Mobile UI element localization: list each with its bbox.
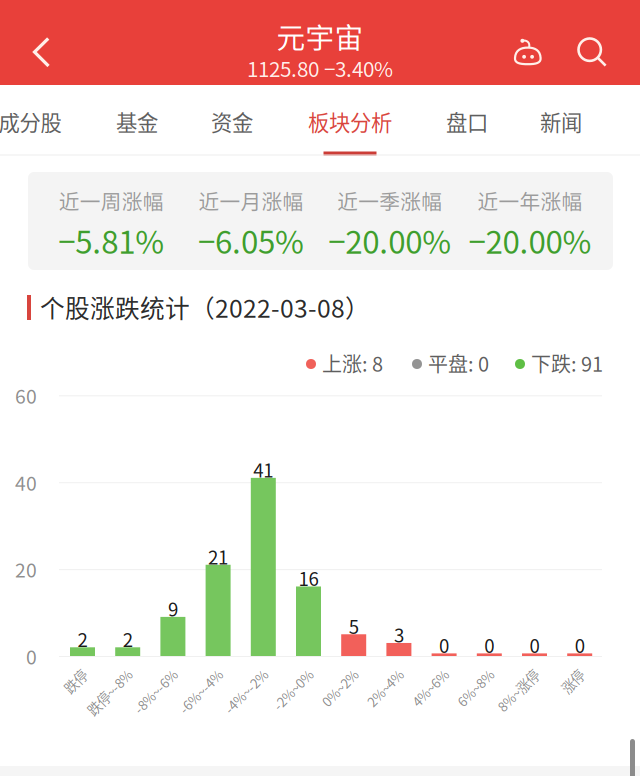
staticText: -8%~-6%	[120, 662, 175, 682]
staticText: 资金	[211, 106, 253, 137]
staticText: −20.00%	[468, 217, 591, 263]
staticText: 成分股	[0, 106, 61, 137]
button[interactable]: 基金	[95, 85, 179, 155]
staticText: 4%~6%	[401, 662, 446, 682]
button[interactable]: 板块分析	[292, 85, 408, 155]
staticText: 近一周涨幅	[59, 185, 164, 215]
staticText: 跌停~-8%	[73, 662, 130, 682]
staticText: 21	[208, 543, 228, 570]
staticText: 近一月涨幅	[198, 185, 303, 215]
staticText: 0%~2%	[311, 662, 356, 682]
staticText: 个股涨跌统计（2022-03-08）	[40, 289, 370, 325]
staticText: 0	[439, 631, 449, 658]
staticText: 近一季涨幅	[337, 185, 442, 215]
staticText: −20.00%	[328, 217, 451, 263]
staticText: 6%~8%	[446, 662, 491, 682]
staticText: 16	[298, 564, 318, 591]
staticText: −5.81%	[58, 217, 164, 263]
staticText: 盘口	[446, 106, 488, 137]
staticText: 上涨: 8	[322, 348, 383, 377]
staticText: 跌停	[58, 662, 84, 682]
staticText: 0	[529, 631, 539, 658]
staticText: 基金	[116, 106, 158, 137]
staticText: 9	[168, 595, 178, 622]
staticText: 40	[15, 468, 37, 496]
staticText: 0	[575, 631, 585, 658]
staticText: 2%~4%	[356, 662, 401, 682]
staticText: -2%~0%	[260, 662, 310, 682]
button[interactable]: 资金	[190, 85, 274, 155]
staticText: 0	[484, 631, 494, 658]
staticText: 平盘: 0	[428, 348, 489, 377]
staticText: 板块分析	[308, 106, 392, 137]
button[interactable]: Back	[0, 0, 68, 85]
staticText: 新闻	[540, 106, 582, 137]
staticText: 元宇宙	[276, 15, 363, 57]
staticText: 涨停	[556, 662, 582, 682]
button[interactable]: 新闻	[519, 85, 603, 155]
staticText: 0	[26, 642, 37, 670]
button[interactable]: 成分股	[0, 85, 80, 155]
staticText: -4%~-2%	[210, 662, 265, 682]
staticText: 3	[394, 621, 404, 648]
staticText: 下跌: 91	[531, 348, 603, 377]
staticText: -6%~-4%	[165, 662, 220, 682]
staticText: 1125.80 −3.40%	[247, 53, 393, 83]
staticText: 60	[15, 381, 37, 409]
staticText: 8%~涨停	[484, 662, 536, 682]
staticText: 2	[77, 625, 87, 652]
staticText: 41	[253, 456, 273, 483]
staticText: −6.05%	[198, 217, 304, 263]
staticText: 20	[15, 555, 37, 583]
staticText: 近一年涨幅	[477, 185, 582, 215]
button[interactable]: 盘口	[425, 85, 509, 155]
button[interactable]: Assistant	[500, 0, 562, 85]
button[interactable]: Search	[563, 0, 625, 85]
staticText: 2	[123, 625, 133, 652]
staticText: 5	[349, 612, 359, 639]
